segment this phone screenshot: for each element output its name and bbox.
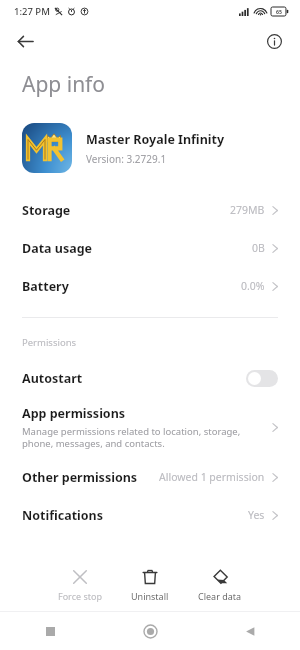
staticText: Battery: [22, 278, 69, 295]
staticText: Yes: [248, 508, 265, 522]
staticText: Other permissions: [22, 469, 138, 486]
staticText: App permissions: [22, 405, 126, 422]
button[interactable]: Back: [200, 612, 300, 650]
button[interactable]: Other permissions: [0, 458, 300, 496]
button[interactable]: Battery: [0, 267, 300, 305]
staticText: Data usage: [22, 240, 93, 257]
staticText: Allowed 1 permission: [159, 470, 265, 484]
staticText: App info: [22, 70, 106, 99]
staticText: Clear data: [198, 590, 242, 602]
button[interactable]: App details: [258, 25, 290, 57]
button[interactable]: Back: [8, 24, 42, 58]
staticText: 65: [276, 8, 282, 15]
button[interactable]: Autostart: [0, 359, 300, 397]
staticText: Autostart: [22, 370, 83, 387]
button[interactable]: Home: [100, 612, 200, 650]
staticText: Storage: [22, 202, 71, 219]
staticText: 279MB: [230, 203, 265, 217]
staticText: Permissions: [22, 336, 77, 349]
button[interactable]: Data usage: [0, 229, 300, 267]
button[interactable]: Storage: [0, 191, 300, 229]
button[interactable]: Clear data: [185, 559, 255, 611]
staticText: 0B: [252, 241, 265, 255]
staticText: 0.0%: [241, 279, 265, 293]
button[interactable]: App permissions: [0, 397, 300, 458]
button[interactable]: Uninstall: [115, 559, 185, 611]
button[interactable]: Notifications: [0, 496, 300, 534]
staticText: Force stop: [58, 590, 102, 602]
staticText: Uninstall: [131, 590, 169, 602]
button[interactable]: Force stop: [45, 559, 115, 611]
staticText: 1:27 PM: [14, 5, 50, 18]
staticText: Manage permissions related to location, …: [22, 425, 241, 450]
staticText: Master Royale Infinity: [86, 131, 225, 148]
button[interactable]: Recents: [0, 612, 100, 650]
staticText: Notifications: [22, 507, 104, 524]
staticText: Version: 3.2729.1: [86, 152, 167, 166]
